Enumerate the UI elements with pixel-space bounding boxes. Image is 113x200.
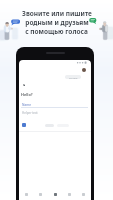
staticText: Звоните или пишите (22, 9, 92, 18)
staticText: Hello? (21, 92, 33, 97)
button[interactable]: Tab 5 (77, 188, 90, 200)
button[interactable]: Tab 3 (49, 188, 62, 200)
button[interactable]: Tab 4 (63, 188, 76, 200)
staticText: с помощью голоса (25, 27, 88, 36)
button[interactable] (45, 124, 54, 127)
button[interactable]: Tab 1 (20, 188, 33, 200)
staticText: Helper text (22, 111, 38, 115)
staticText: I'm fine (69, 76, 78, 79)
button[interactable]: Profile (82, 68, 86, 72)
staticText: Name (22, 103, 31, 107)
button[interactable]: Selected (22, 123, 26, 127)
staticText: родным и друзьям (25, 18, 89, 27)
button[interactable]: Tab 2 (34, 188, 47, 200)
